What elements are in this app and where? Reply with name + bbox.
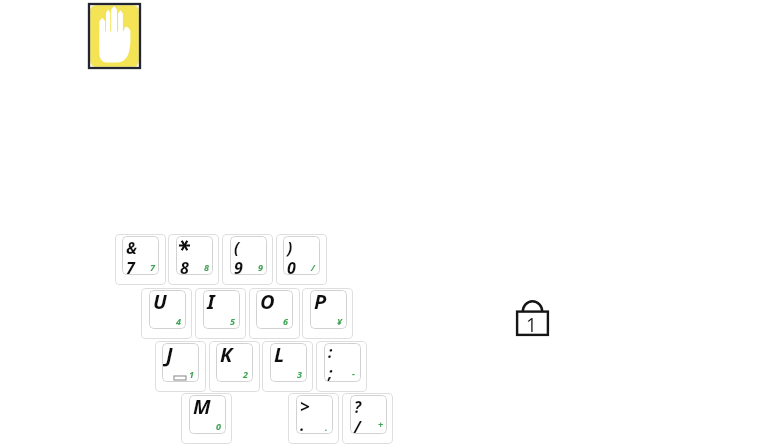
button[interactable] bbox=[181, 393, 232, 444]
button[interactable] bbox=[316, 341, 367, 392]
staticText: ( bbox=[234, 237, 240, 258]
staticText: ; bbox=[328, 362, 333, 382]
staticText: I bbox=[207, 290, 215, 315]
staticText: M bbox=[193, 395, 211, 420]
staticText: > bbox=[300, 395, 310, 418]
button[interactable] bbox=[302, 288, 353, 339]
staticText: - bbox=[352, 367, 355, 379]
staticText: J bbox=[166, 343, 173, 368]
staticText: 5 bbox=[230, 315, 235, 327]
staticText: U bbox=[153, 290, 167, 315]
button[interactable]: Caps lock bbox=[516, 300, 549, 336]
staticText: 1 bbox=[189, 368, 194, 380]
staticText: 8 bbox=[180, 257, 189, 275]
staticText: 9 bbox=[234, 257, 243, 275]
button[interactable] bbox=[249, 288, 300, 339]
staticText: . bbox=[325, 421, 328, 433]
staticText: + bbox=[378, 418, 384, 430]
staticText: 8 bbox=[204, 261, 209, 273]
button[interactable] bbox=[262, 341, 313, 392]
staticText: 7 bbox=[150, 261, 155, 273]
staticText: / bbox=[311, 261, 315, 273]
button[interactable]: Stop hand bbox=[89, 4, 140, 68]
staticText: : bbox=[328, 343, 333, 362]
staticText: / bbox=[354, 416, 361, 434]
staticText: ? bbox=[354, 396, 362, 417]
staticText: 3 bbox=[297, 368, 302, 380]
button[interactable] bbox=[209, 341, 260, 392]
button[interactable] bbox=[168, 234, 219, 285]
button[interactable] bbox=[342, 393, 393, 444]
button[interactable] bbox=[276, 234, 327, 285]
button[interactable] bbox=[155, 341, 206, 392]
staticText: & bbox=[126, 237, 137, 258]
staticText: L bbox=[274, 343, 285, 368]
staticText: 9 bbox=[258, 261, 263, 273]
staticText: 0 bbox=[216, 420, 221, 432]
staticText: 7 bbox=[126, 257, 135, 275]
button[interactable] bbox=[141, 288, 192, 339]
staticText: 4 bbox=[176, 315, 181, 327]
staticText: P bbox=[314, 290, 327, 315]
button[interactable] bbox=[195, 288, 246, 339]
staticText: 2 bbox=[243, 368, 248, 380]
button[interactable] bbox=[222, 234, 273, 285]
button[interactable] bbox=[115, 234, 166, 285]
staticText: K bbox=[220, 343, 233, 368]
staticText: O bbox=[260, 290, 275, 315]
staticText: . bbox=[300, 414, 305, 434]
staticText: 1 bbox=[526, 312, 537, 338]
button[interactable] bbox=[288, 393, 339, 444]
staticText: 0 bbox=[287, 257, 296, 275]
staticText: ¥ bbox=[337, 315, 342, 327]
staticText: 6 bbox=[283, 315, 288, 327]
staticText: ) bbox=[287, 237, 293, 258]
